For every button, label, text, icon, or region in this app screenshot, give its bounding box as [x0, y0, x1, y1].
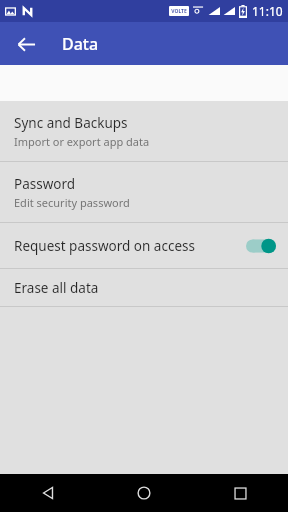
staticText: VOLTE: [171, 8, 187, 15]
staticText: Erase all data: [14, 279, 99, 297]
button[interactable]: Request password on access: [0, 223, 288, 268]
button[interactable]: Home: [96, 474, 192, 512]
staticText: 11:10: [252, 3, 283, 19]
button[interactable]: Erase all data: [0, 269, 288, 306]
button[interactable]: Sync and Backups: [0, 101, 288, 161]
staticText: Request password on access: [14, 237, 246, 255]
staticText: Data: [62, 33, 99, 55]
button[interactable]: Back: [0, 474, 96, 512]
staticText: Password: [14, 175, 76, 193]
staticText: Import or export app data: [14, 134, 150, 149]
button[interactable]: Recent apps: [192, 474, 288, 512]
button[interactable]: Back: [8, 26, 44, 62]
button[interactable]: Password: [0, 162, 288, 222]
staticText: Edit security password: [14, 195, 130, 210]
staticText: Sync and Backups: [14, 114, 128, 132]
